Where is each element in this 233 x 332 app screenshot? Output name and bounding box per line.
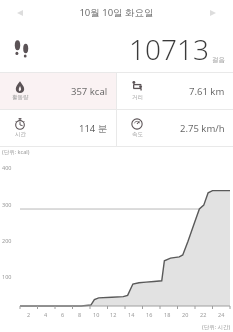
staticText: 100	[2, 273, 12, 280]
staticText: 18	[164, 311, 171, 318]
staticText: 200	[2, 237, 12, 244]
staticText: 10월 10일 화요일	[79, 6, 154, 19]
staticText: 2	[27, 311, 31, 318]
staticText: 357 kcal	[71, 85, 108, 98]
staticText: 12	[110, 311, 117, 318]
staticText: (단위: kcal)	[2, 148, 30, 156]
button[interactable]: Duration	[0, 110, 116, 146]
staticText: 활동량	[12, 94, 29, 101]
button[interactable]: Next day	[201, 1, 225, 25]
staticText: 속도	[132, 131, 143, 138]
staticText: 400	[2, 164, 12, 171]
staticText: 10713	[129, 30, 209, 68]
button[interactable]: Previous day	[8, 1, 32, 25]
staticText: 4	[44, 311, 48, 318]
staticText: 2.75 km/h	[180, 122, 225, 135]
staticText: 6	[61, 311, 65, 318]
staticText: 16	[146, 311, 153, 318]
button[interactable]: Calories	[0, 73, 116, 109]
staticText: 300	[2, 201, 12, 208]
staticText: 114 분	[79, 122, 108, 135]
staticText: 10	[93, 311, 100, 318]
staticText: 8	[78, 311, 82, 318]
button[interactable]: Distance	[117, 73, 233, 109]
staticText: 22	[200, 311, 207, 318]
staticText: (단위: 시간)	[202, 323, 231, 331]
staticText: 거리	[132, 94, 143, 101]
staticText: 24	[218, 311, 225, 318]
staticText: 7.61 km	[189, 85, 225, 98]
staticText: 20	[182, 311, 189, 318]
button[interactable]: 10713	[0, 25, 233, 72]
staticText: 14	[128, 311, 135, 318]
staticText: 걸음	[212, 56, 225, 64]
staticText: 시간	[15, 131, 26, 138]
button[interactable]: Speed	[117, 110, 233, 146]
